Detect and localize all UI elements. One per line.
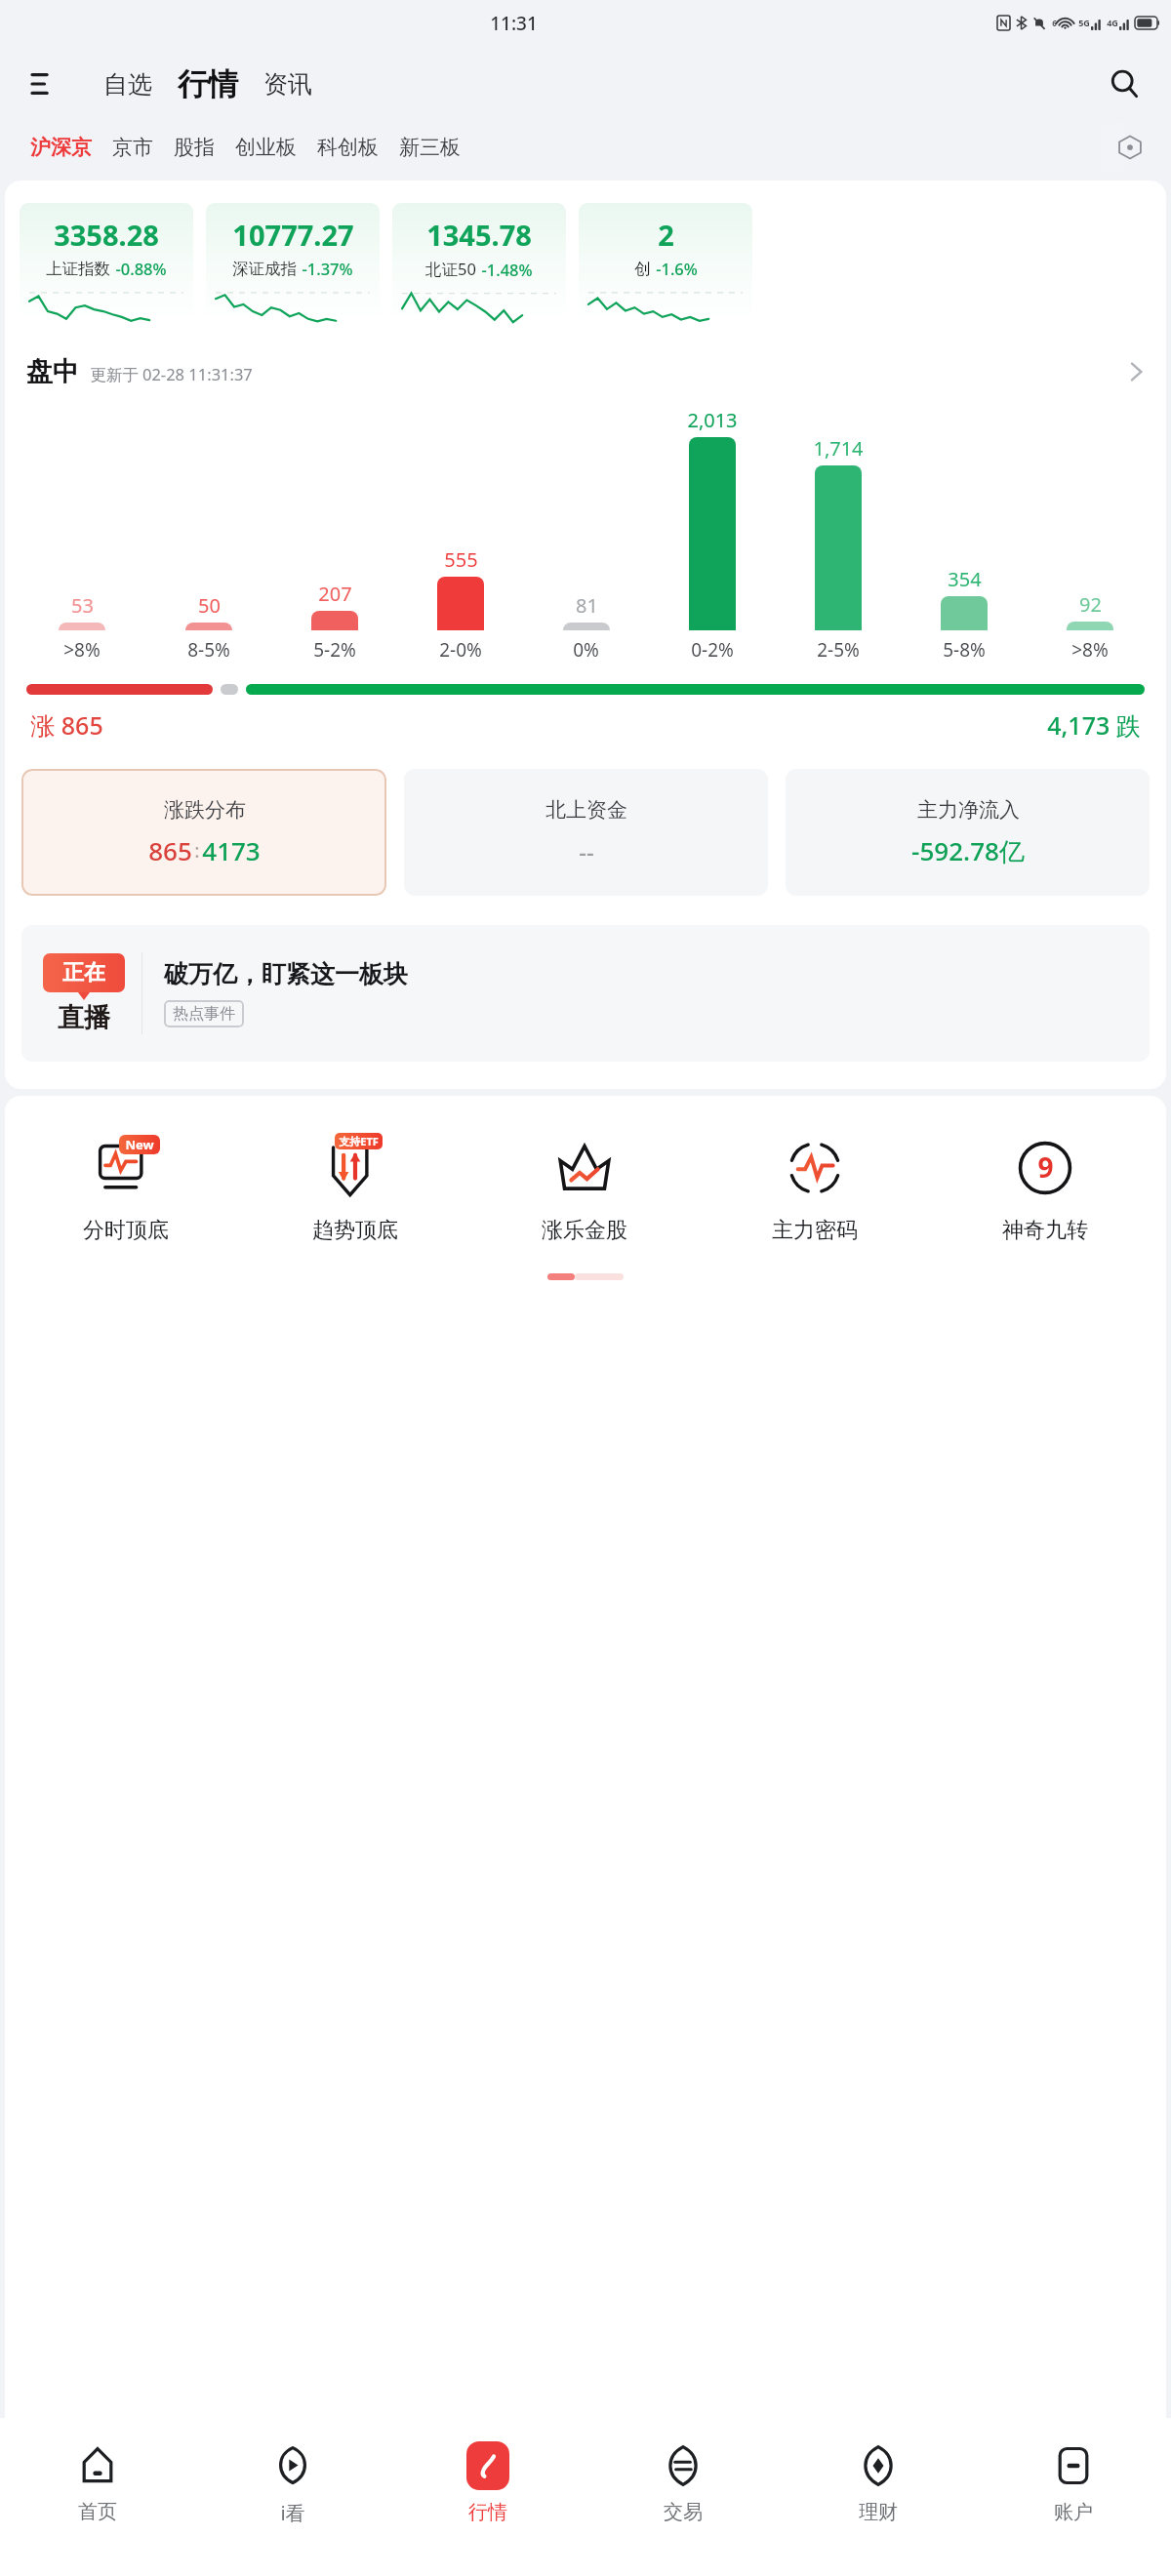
staticText: 股指: [174, 135, 215, 160]
button[interactable]: Search: [1099, 59, 1150, 109]
staticText: 354: [948, 566, 982, 592]
staticText: 首页: [78, 2500, 117, 2524]
button[interactable]: i看: [195, 2435, 390, 2530]
button[interactable]: 主力净流入: [786, 769, 1150, 896]
button[interactable]: 支持ETF: [240, 1129, 469, 1248]
staticText: -1.37%: [302, 258, 353, 279]
staticText: 科创板: [317, 135, 379, 160]
staticText: 53: [71, 592, 94, 619]
staticText: 207: [318, 581, 352, 607]
staticText: i看: [280, 2500, 305, 2526]
staticText: 神奇九转: [1002, 1217, 1088, 1244]
staticText: 分时顶底: [83, 1217, 169, 1244]
button[interactable]: 理财: [781, 2435, 976, 2528]
staticText: -1.48%: [481, 259, 533, 280]
staticText: -1.6%: [656, 258, 698, 279]
staticText: -0.88%: [115, 258, 167, 279]
staticText: 新三板: [399, 135, 461, 160]
button[interactable]: 3358.28: [20, 203, 193, 326]
staticText: >8%: [1071, 637, 1109, 663]
button[interactable]: 10777.27: [206, 203, 380, 326]
staticText: >8%: [63, 637, 101, 663]
staticText: 正在: [62, 959, 105, 986]
button[interactable]: Menu: [21, 61, 66, 106]
button[interactable]: 新三板: [390, 129, 469, 166]
button[interactable]: 资讯: [254, 63, 322, 105]
staticText: 2: [658, 216, 674, 254]
staticText: 8-5%: [187, 637, 230, 663]
staticText: 主力密码: [772, 1217, 858, 1244]
staticText: 2-0%: [439, 637, 482, 663]
staticText: 沪深京: [30, 135, 92, 160]
staticText: 涨跌分布: [164, 797, 246, 823]
staticText: 交易: [664, 2500, 703, 2524]
button[interactable]: 北上资金: [404, 769, 768, 896]
button[interactable]: 涨乐金股: [469, 1129, 700, 1248]
button[interactable]: 股指: [165, 129, 223, 166]
staticText: 深证成指: [232, 259, 297, 279]
staticText: 趋势顶底: [312, 1217, 398, 1244]
staticText: 1345.78: [426, 216, 532, 254]
button[interactable]: 涨跌分布: [21, 769, 386, 896]
staticText: 热点事件: [173, 1004, 235, 1024]
button[interactable]: New: [11, 1129, 240, 1248]
staticText: 10777.27: [232, 216, 354, 254]
staticText: 5-2%: [313, 637, 356, 663]
button[interactable]: 自选: [94, 63, 162, 105]
button[interactable]: 交易: [585, 2435, 781, 2528]
staticText: 更新于 02-28 11:31:37: [90, 363, 253, 385]
staticText: 上证指数: [46, 259, 110, 279]
staticText: 2-5%: [817, 637, 860, 663]
staticText: 盘中: [26, 355, 79, 388]
staticText: 5G: [1078, 17, 1090, 28]
staticText: 京市: [112, 135, 153, 160]
staticText: 4G: [1107, 17, 1118, 28]
button[interactable]: Edit categories: [1109, 126, 1151, 169]
staticText: 创: [634, 259, 651, 279]
button[interactable]: 盘中: [26, 349, 1147, 394]
staticText: 北上资金: [545, 797, 627, 823]
staticText: 0-2%: [691, 637, 734, 663]
staticText: 主力净流入: [917, 797, 1020, 823]
staticText: 涨乐金股: [542, 1217, 627, 1244]
button[interactable]: 行情: [390, 2435, 585, 2528]
staticText: 行情: [178, 65, 238, 103]
staticText: 6: [1052, 18, 1057, 28]
staticText: 破万亿，盯紧这一板块: [164, 959, 408, 989]
staticText: 81: [576, 592, 598, 619]
button[interactable]: 9: [930, 1129, 1160, 1248]
staticText: 支持ETF: [339, 1134, 379, 1148]
button[interactable]: 科创板: [308, 129, 387, 166]
staticText: --: [579, 835, 594, 867]
staticText: 账户: [1054, 2500, 1093, 2524]
staticText: 2,013: [687, 407, 738, 433]
button[interactable]: 行情: [168, 63, 248, 105]
staticText: :: [194, 837, 200, 864]
staticText: 555: [444, 546, 478, 573]
button[interactable]: 账户: [976, 2435, 1171, 2528]
button[interactable]: 京市: [103, 129, 162, 166]
staticText: 直播: [58, 1001, 110, 1034]
staticText: 1,714: [813, 435, 864, 462]
button[interactable]: 正在: [21, 925, 1150, 1062]
staticText: 行情: [468, 2500, 507, 2524]
staticText: -592.78亿: [911, 833, 1025, 868]
staticText: 理财: [859, 2500, 898, 2524]
button[interactable]: 沪深京: [21, 129, 101, 166]
staticText: 865: [148, 833, 192, 867]
staticText: 创业板: [235, 135, 297, 160]
staticText: 资讯: [263, 69, 312, 100]
staticText: 11:31: [490, 11, 538, 36]
button[interactable]: 1345.78: [392, 203, 566, 326]
staticText: 50: [198, 592, 221, 619]
button[interactable]: 首页: [0, 2435, 195, 2528]
staticText: 9: [1037, 1148, 1054, 1186]
button[interactable]: 主力密码: [700, 1129, 930, 1248]
staticText: 自选: [103, 69, 152, 100]
staticText: 4173: [202, 833, 261, 867]
button[interactable]: 2: [579, 203, 752, 326]
staticText: 0%: [573, 637, 599, 663]
button[interactable]: 创业板: [226, 129, 305, 166]
staticText: 北证50: [425, 258, 476, 280]
staticText: New: [125, 1136, 154, 1153]
